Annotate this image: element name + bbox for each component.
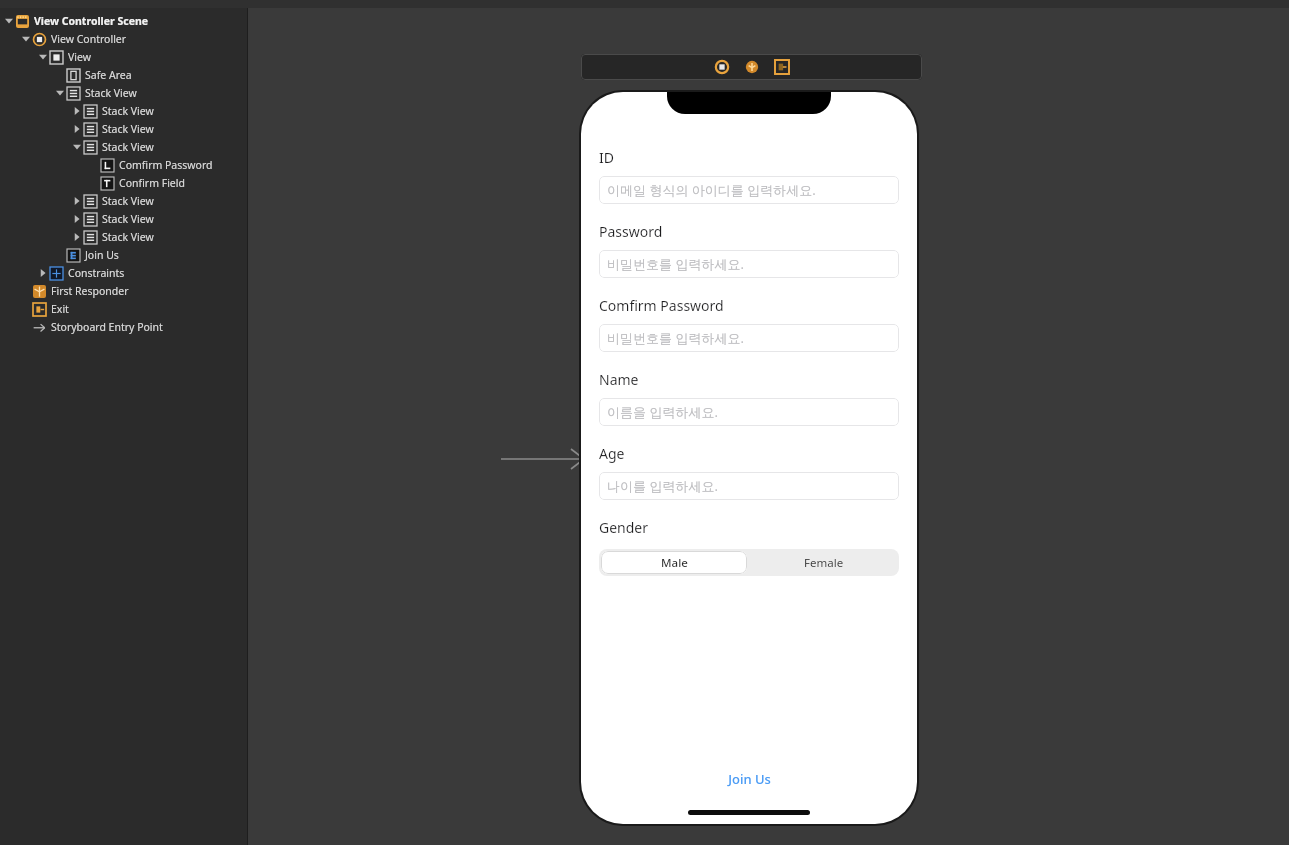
button[interactable]: Stack View xyxy=(0,120,247,138)
staticText: View Controller xyxy=(51,32,127,46)
staticText: Male xyxy=(661,555,688,571)
staticText: Age xyxy=(599,444,625,463)
staticText: Comfirm Password xyxy=(119,158,213,172)
button[interactable]: Exit xyxy=(0,300,247,318)
staticText: First Responder xyxy=(51,284,129,298)
staticText: Stack View xyxy=(102,122,154,136)
button[interactable]: Constraints xyxy=(0,264,247,282)
button[interactable]: Join Us xyxy=(0,246,247,264)
button[interactable]: Stack View xyxy=(0,228,247,246)
staticText: Confirm Field xyxy=(119,176,185,190)
button[interactable]: Join Us xyxy=(599,762,899,796)
button[interactable]: First Responder xyxy=(0,282,247,300)
staticText: Stack View xyxy=(102,140,154,154)
button[interactable]: First responder xyxy=(745,60,759,74)
button[interactable]: 비밀번호를 입력하세요. xyxy=(599,324,899,352)
staticText: View xyxy=(68,50,91,64)
staticText: Stack View xyxy=(102,194,154,208)
staticText: Stack View xyxy=(102,212,154,226)
button[interactable]: 이메일 형식의 아이디를 입력하세요. xyxy=(599,176,899,204)
staticText: Exit xyxy=(51,302,69,316)
staticText: Gender xyxy=(599,518,649,537)
staticText: 나이를 입력하세요. xyxy=(607,477,718,495)
staticText: 이름을 입력하세요. xyxy=(607,403,718,421)
button[interactable]: Stack View xyxy=(0,192,247,210)
staticText: Comfirm Password xyxy=(599,296,724,315)
staticText: 비밀번호를 입력하세요. xyxy=(607,329,744,347)
button[interactable]: View Controller xyxy=(0,30,247,48)
staticText: Join Us xyxy=(728,770,771,788)
button[interactable]: Comfirm Password xyxy=(0,156,247,174)
staticText: Stack View xyxy=(85,86,137,100)
button[interactable]: View controller xyxy=(715,60,729,74)
button[interactable]: Confirm Field xyxy=(0,174,247,192)
staticText: 비밀번호를 입력하세요. xyxy=(607,255,744,273)
staticText: Stack View xyxy=(102,230,154,244)
staticText: View Controller Scene xyxy=(34,14,148,28)
staticText: Female xyxy=(804,555,844,571)
staticText: Constraints xyxy=(68,266,125,280)
staticText: Safe Area xyxy=(85,68,132,82)
button[interactable]: 비밀번호를 입력하세요. xyxy=(599,250,899,278)
button[interactable]: Stack View xyxy=(0,102,247,120)
button[interactable]: 나이를 입력하세요. xyxy=(599,472,899,500)
staticText: Join Us xyxy=(85,248,119,262)
button[interactable]: 이름을 입력하세요. xyxy=(599,398,899,426)
button[interactable]: Storyboard Entry Point xyxy=(0,318,247,336)
button[interactable]: Safe Area xyxy=(0,66,247,84)
button[interactable]: Stack View xyxy=(0,138,247,156)
staticText: Storyboard Entry Point xyxy=(51,320,163,334)
button[interactable]: View Controller Scene xyxy=(0,12,247,30)
button[interactable]: Stack View xyxy=(0,210,247,228)
button[interactable]: Male xyxy=(601,551,747,574)
button[interactable]: View xyxy=(0,48,247,66)
staticText: 이메일 형식의 아이디를 입력하세요. xyxy=(607,181,816,199)
staticText: Name xyxy=(599,370,639,389)
staticText: Password xyxy=(599,222,663,241)
button[interactable]: Exit xyxy=(775,60,789,74)
button[interactable]: Stack View xyxy=(0,84,247,102)
button[interactable]: Female xyxy=(749,549,899,576)
staticText: Stack View xyxy=(102,104,154,118)
staticText: ID xyxy=(599,148,614,167)
